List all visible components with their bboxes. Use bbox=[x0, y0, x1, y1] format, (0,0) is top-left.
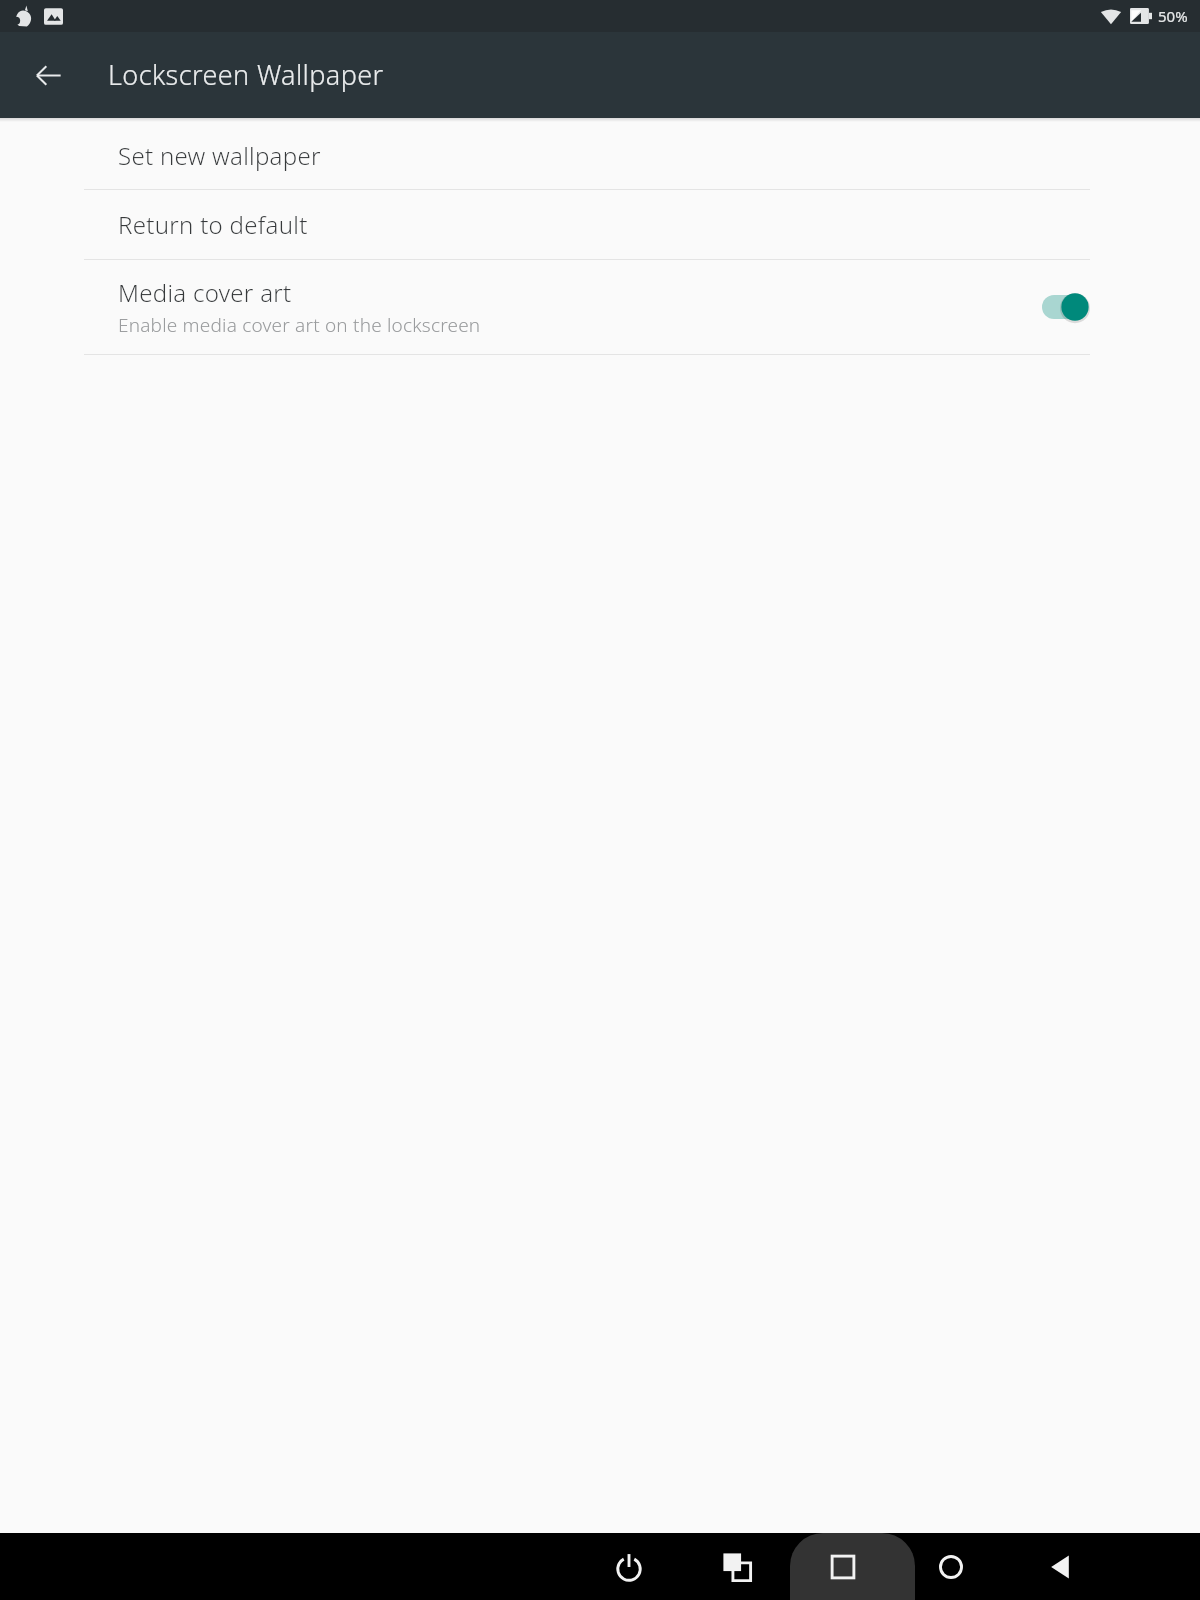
button[interactable]: Split screen bbox=[707, 1533, 767, 1600]
staticText: Set new wallpaper bbox=[118, 139, 321, 172]
staticText: Media cover art bbox=[118, 276, 292, 309]
button[interactable]: Home bbox=[921, 1533, 981, 1600]
button[interactable]: Media cover art toggle bbox=[1038, 290, 1090, 324]
staticText: Enable media cover art on the lockscreen bbox=[118, 312, 481, 338]
button[interactable]: Back bbox=[20, 47, 76, 103]
staticText: Return to default bbox=[118, 208, 308, 241]
button[interactable]: Back bbox=[1030, 1533, 1090, 1600]
staticText: Lockscreen Wallpaper bbox=[108, 56, 384, 93]
staticText: 50% bbox=[1158, 6, 1188, 26]
button[interactable]: Set new wallpaper bbox=[0, 122, 1200, 189]
button[interactable]: Return to default bbox=[0, 190, 1200, 259]
button[interactable]: Power bbox=[599, 1533, 659, 1600]
button[interactable]: Recent apps bbox=[813, 1533, 873, 1600]
button[interactable]: Media cover art bbox=[0, 260, 1200, 354]
